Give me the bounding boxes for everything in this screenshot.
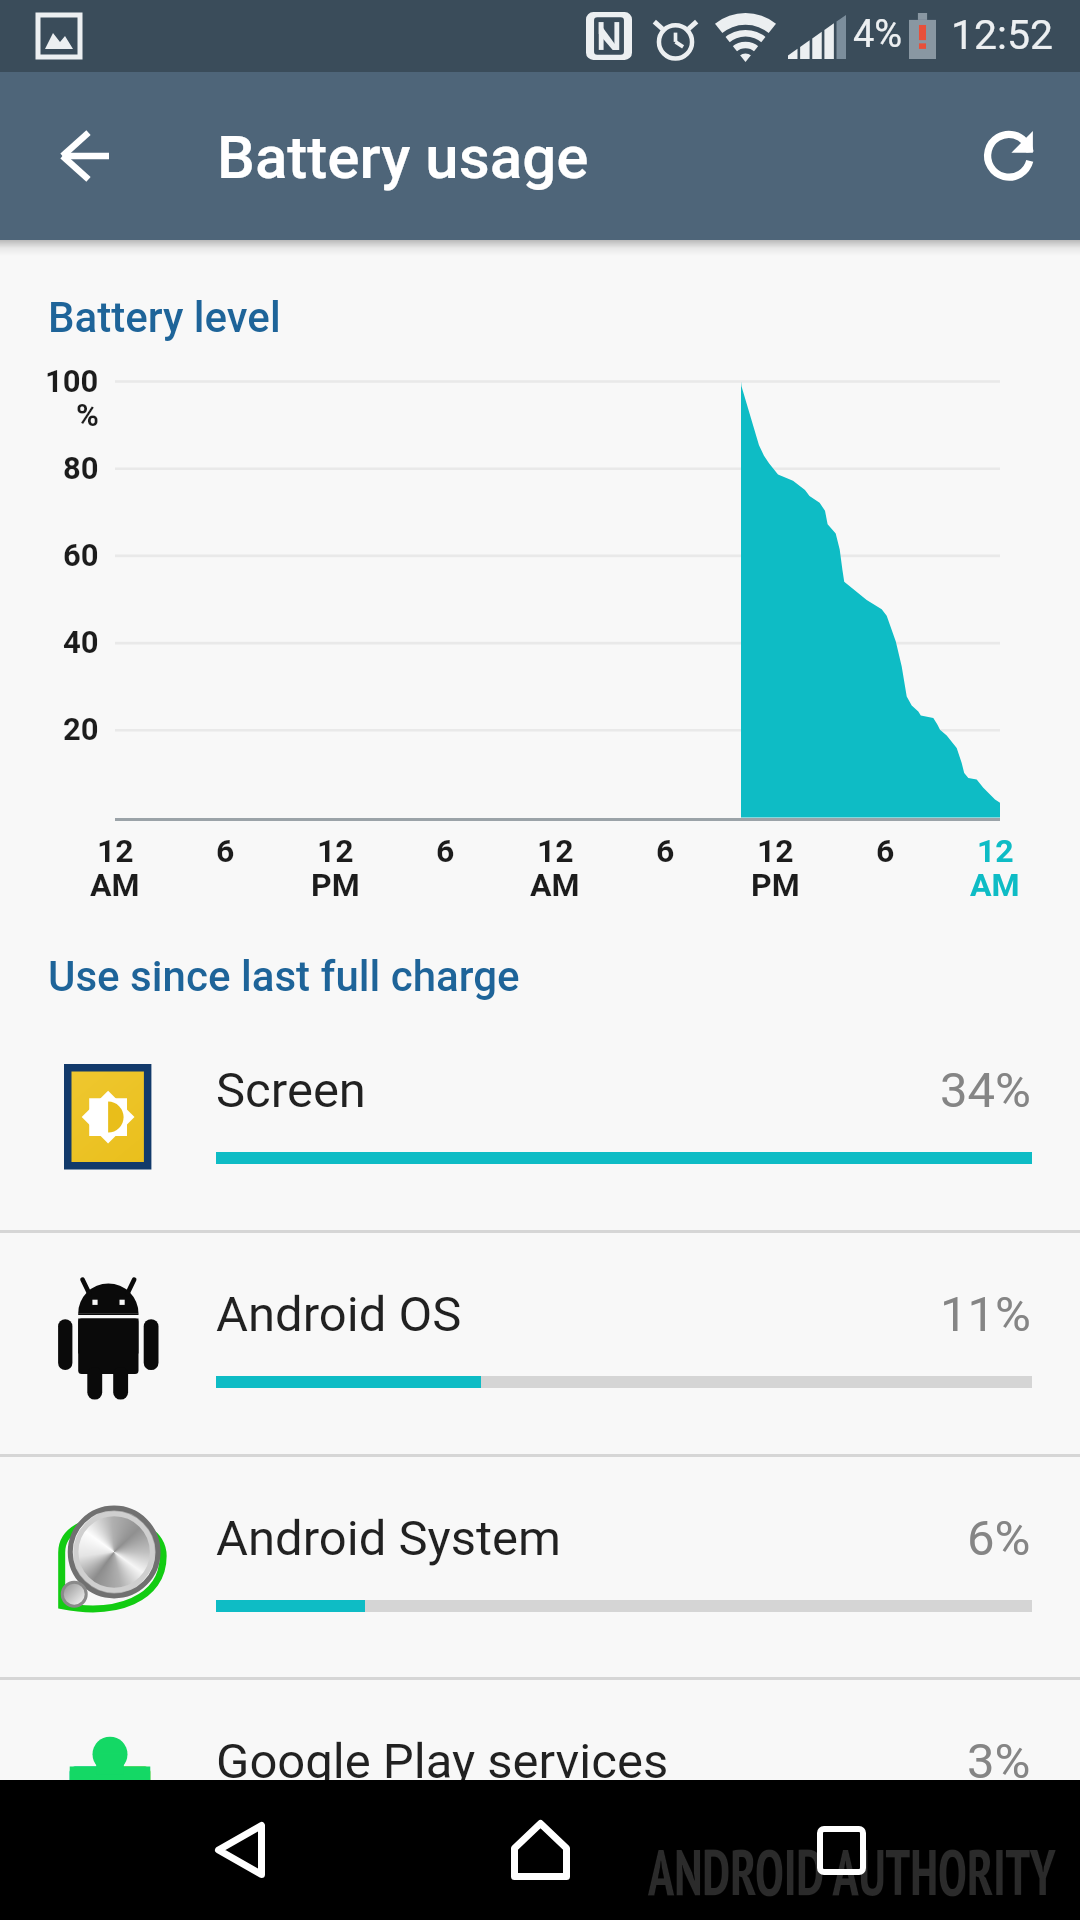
staticText: 12: [97, 832, 134, 870]
staticText: %: [76, 397, 99, 433]
button[interactable]: Home: [450, 1785, 630, 1915]
staticText: 11%: [940, 1286, 1031, 1343]
button[interactable]: Back: [20, 90, 148, 222]
staticText: 34%: [940, 1062, 1031, 1119]
staticText: AM: [530, 866, 580, 904]
staticText: 6: [436, 832, 455, 870]
button[interactable]: Back: [150, 1785, 330, 1915]
button[interactable]: Android System: [0, 1457, 1080, 1679]
button[interactable]: Screen: [0, 1009, 1080, 1231]
staticText: 12: [317, 832, 354, 870]
staticText: 12: [537, 832, 574, 870]
staticText: Battery level: [48, 293, 281, 342]
staticText: 100: [45, 363, 99, 399]
button[interactable]: Android OS: [0, 1233, 1080, 1455]
staticText: Android System: [216, 1510, 561, 1567]
staticText: Google Play services: [216, 1733, 669, 1790]
button[interactable]: Google Play services: [0, 1680, 1080, 1902]
staticText: AM: [970, 866, 1020, 904]
button[interactable]: Refresh: [944, 90, 1073, 222]
staticText: 12:52: [951, 11, 1054, 59]
button[interactable]: Recents: [751, 1785, 931, 1915]
staticText: PM: [751, 866, 800, 904]
staticText: 6: [216, 832, 235, 870]
staticText: 6: [656, 832, 675, 870]
staticText: AM: [90, 866, 140, 904]
staticText: 12: [757, 832, 794, 870]
staticText: 20: [63, 711, 99, 747]
staticText: ANDROID AUTHORITY: [648, 1830, 1055, 1913]
staticText: Screen: [216, 1062, 366, 1119]
staticText: 80: [63, 450, 99, 486]
staticText: 6: [876, 832, 895, 870]
staticText: Android OS: [216, 1286, 462, 1343]
staticText: PM: [311, 866, 360, 904]
staticText: 12: [977, 832, 1014, 870]
staticText: 40: [63, 624, 99, 660]
staticText: Use since last full charge: [48, 952, 520, 1001]
staticText: 60: [63, 537, 99, 573]
staticText: 3%: [967, 1733, 1031, 1790]
staticText: Battery usage: [217, 122, 589, 192]
staticText: 6%: [967, 1510, 1031, 1567]
staticText: 4%: [853, 12, 903, 57]
